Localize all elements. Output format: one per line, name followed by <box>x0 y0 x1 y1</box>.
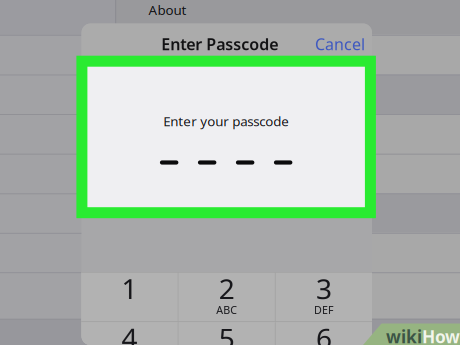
staticText: 3 <box>316 270 332 307</box>
button[interactable]: Cancel <box>307 26 373 62</box>
staticText: 4 <box>122 319 138 345</box>
staticText: 1 <box>122 270 138 307</box>
button[interactable]: 6 <box>276 322 372 345</box>
button[interactable]: 5 <box>179 322 275 345</box>
staticText: DEF <box>314 303 334 317</box>
button[interactable]: 4 <box>81 322 178 345</box>
staticText: Enter Passcode <box>161 33 278 55</box>
staticText: About <box>148 1 186 19</box>
button[interactable]: 2 <box>179 273 275 321</box>
staticText: ABC <box>216 303 237 317</box>
staticText: How <box>422 325 460 345</box>
button[interactable]: 1 <box>81 273 178 321</box>
staticText: Enter your passcode <box>163 112 289 130</box>
staticText: 6 <box>316 319 332 345</box>
staticText: 2 <box>219 270 235 307</box>
staticText: Cancel <box>315 33 365 55</box>
staticText: wiki <box>386 325 422 345</box>
button[interactable]: 3 <box>276 273 372 321</box>
staticText: 5 <box>219 319 235 345</box>
